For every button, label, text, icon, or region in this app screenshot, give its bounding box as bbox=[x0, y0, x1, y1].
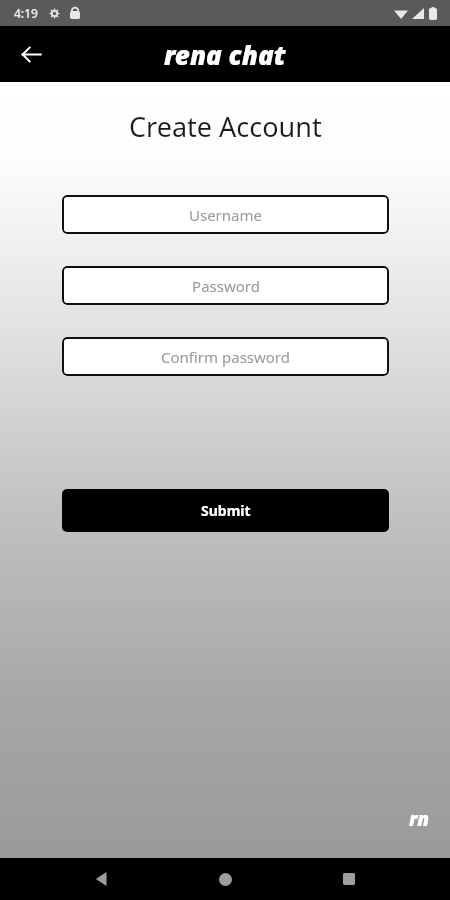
button[interactable]: Back bbox=[80, 858, 124, 900]
button[interactable]: Back bbox=[10, 33, 52, 75]
staticText: rn bbox=[409, 806, 430, 832]
button[interactable]: Recent apps bbox=[327, 858, 371, 900]
button[interactable]: Username bbox=[62, 195, 389, 234]
button[interactable]: Submit bbox=[62, 489, 389, 532]
button[interactable]: Home bbox=[203, 858, 247, 900]
staticText: rena chat bbox=[164, 37, 286, 72]
staticText: Password bbox=[192, 276, 260, 296]
staticText: Username bbox=[189, 205, 262, 225]
staticText: Create Account bbox=[129, 108, 322, 145]
staticText: Confirm password bbox=[161, 347, 290, 367]
button[interactable]: Password bbox=[62, 266, 389, 305]
button[interactable]: Confirm password bbox=[62, 337, 389, 376]
staticText: 4:19 bbox=[14, 5, 38, 21]
staticText: Submit bbox=[201, 501, 251, 520]
